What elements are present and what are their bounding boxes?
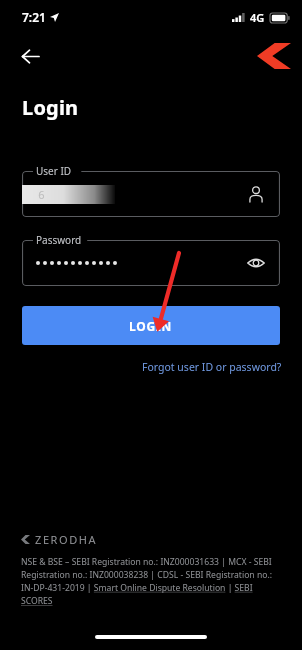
button[interactable]: Show password: [243, 250, 269, 276]
staticText: Password: [36, 233, 82, 247]
staticText: LOGIN: [129, 318, 173, 334]
button[interactable]: 6: [22, 171, 280, 217]
staticText: 6: [24, 187, 45, 202]
staticText: Login: [22, 94, 79, 121]
button[interactable]: Zerodha logo: [252, 36, 296, 76]
staticText: 7:21: [22, 9, 46, 25]
button[interactable]: Back: [10, 36, 50, 76]
staticText: ZERODHA: [35, 532, 98, 547]
button[interactable]: User: [244, 182, 268, 206]
button[interactable]: Show password: [22, 240, 280, 286]
staticText: User ID: [36, 164, 72, 178]
button[interactable]: LOGIN: [22, 306, 280, 345]
staticText: NSE & BSE – SEBI Registration no.: INZ00…: [21, 556, 281, 607]
button[interactable]: Forgot user ID or password?: [140, 357, 284, 377]
staticText: Forgot user ID or password?: [142, 360, 282, 374]
staticText: 4G: [250, 10, 265, 25]
